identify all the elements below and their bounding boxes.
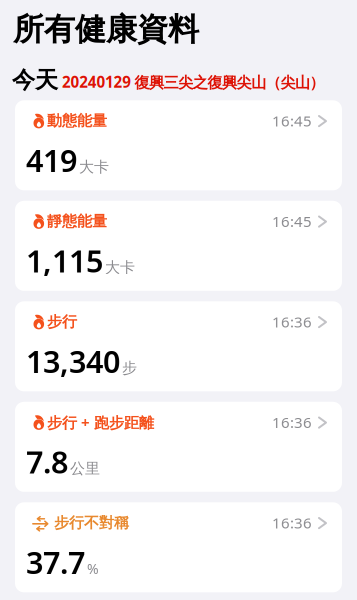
staticText: 靜態能量 [47, 212, 107, 230]
button[interactable]: 步行 [15, 301, 342, 391]
staticText: 16:36 [272, 513, 312, 533]
staticText: 大卡 [79, 158, 109, 176]
staticText: 16:36 [272, 412, 312, 432]
staticText: 16:45 [272, 211, 312, 231]
staticText: 37.7 [26, 542, 85, 582]
staticText: 步行不對稱 [54, 514, 129, 532]
staticText: 大卡 [105, 258, 135, 277]
staticText: 16:36 [272, 312, 312, 332]
staticText: % [87, 559, 99, 578]
button[interactable]: 步行 + 跑步距離 [15, 402, 342, 492]
staticText: 動態能量 [47, 112, 107, 130]
staticText: 步行 [47, 313, 77, 331]
staticText: 公里 [70, 459, 100, 478]
staticText: 所有健康資料 [13, 10, 199, 49]
staticText: 20240129 復興三尖之復興尖山（尖山） [62, 72, 325, 92]
staticText: 7.8 [26, 441, 68, 482]
staticText: 419 [26, 140, 77, 180]
staticText: 今天 [12, 66, 58, 94]
staticText: 步行 + 跑步距離 [47, 412, 154, 432]
staticText: 1,115 [26, 240, 103, 281]
button[interactable]: 動態能量 [15, 100, 342, 190]
staticText: 16:45 [272, 111, 312, 131]
staticText: 13,340 [26, 341, 120, 381]
button[interactable]: 步行不對稱 [15, 502, 342, 592]
button[interactable]: 靜態能量 [15, 201, 342, 291]
staticText: 步 [122, 359, 137, 377]
